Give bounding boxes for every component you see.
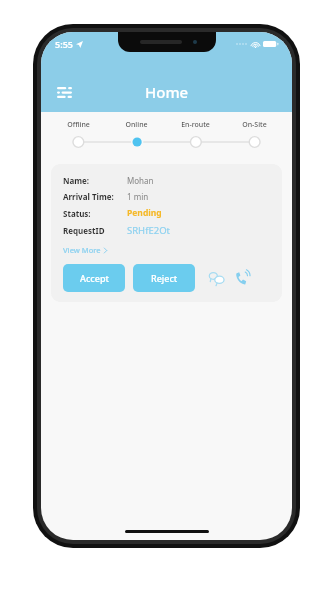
staticText: 5:55 (55, 38, 73, 50)
staticText: Online (125, 120, 148, 130)
staticText: Name: (63, 175, 90, 186)
staticText: On-Site (242, 120, 267, 130)
button[interactable]: Call (233, 268, 253, 288)
staticText: Mohan (127, 175, 154, 186)
button[interactable]: Accept (63, 264, 125, 292)
staticText: View More (63, 245, 101, 255)
button[interactable]: Reject (133, 264, 195, 292)
staticText: En-route (181, 120, 210, 130)
button[interactable]: Chat (207, 268, 227, 288)
staticText: Offline (67, 120, 90, 130)
button[interactable]: Menu (51, 79, 77, 105)
staticText: SRHfE2Ot (127, 224, 170, 237)
button[interactable]: View More (63, 245, 108, 255)
staticText: 1 min (127, 191, 149, 202)
staticText: Status: (63, 208, 91, 219)
staticText: Home (145, 82, 189, 102)
staticText: Pending (127, 207, 162, 219)
staticText: Reject (151, 272, 178, 284)
staticText: Arrival Time: (63, 191, 114, 202)
staticText: Accept (80, 272, 109, 284)
staticText: RequestID (63, 225, 105, 236)
